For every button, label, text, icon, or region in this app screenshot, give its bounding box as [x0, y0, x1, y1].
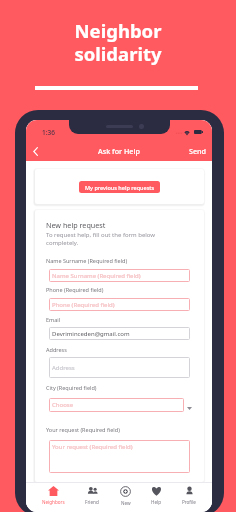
staticText: Profile: [182, 499, 196, 505]
staticText: Your request (Required field): [46, 426, 120, 433]
button[interactable]: Profile: [178, 483, 200, 502]
button[interactable]: Address: [49, 357, 190, 378]
staticText: New: [121, 500, 131, 506]
staticText: Address: [46, 346, 67, 353]
button[interactable]: Choose city: [185, 404, 194, 412]
button[interactable]: Your request (Required field): [49, 440, 190, 473]
staticText: Devriminceden@gmail.com: [52, 330, 130, 338]
staticText: Neighbor solidarity: [74, 18, 162, 66]
staticText: To request help, fill out the form below…: [46, 231, 156, 247]
button[interactable]: New: [116, 483, 135, 503]
button[interactable]: My previous help requests: [79, 181, 160, 193]
staticText: Address: [52, 364, 75, 372]
button[interactable]: Friend: [81, 483, 103, 502]
staticText: Neighbors: [42, 499, 65, 505]
staticText: My previous help requests: [85, 184, 155, 191]
staticText: Choose: [52, 401, 74, 409]
staticText: Phone (Required field): [52, 301, 115, 309]
staticText: Phone (Required field): [46, 286, 104, 293]
staticText: Your request (Required field): [52, 443, 133, 451]
staticText: Send: [189, 146, 207, 156]
button[interactable]: Send: [184, 142, 212, 160]
button[interactable]: Back: [27, 143, 43, 159]
button[interactable]: Name Surname (Required field): [49, 269, 190, 282]
button[interactable]: Devriminceden@gmail.com: [49, 327, 190, 340]
button[interactable]: Choose: [49, 398, 184, 412]
button[interactable]: Help: [147, 483, 166, 502]
staticText: Name Surname (Required field): [52, 272, 141, 280]
staticText: City (Required field): [46, 384, 97, 391]
staticText: Help: [151, 499, 162, 505]
staticText: Email: [46, 316, 61, 323]
staticText: New help request: [46, 220, 106, 230]
staticText: Friend: [85, 499, 99, 505]
staticText: Ask for Help: [98, 146, 140, 156]
button[interactable]: Neighbors: [38, 483, 69, 502]
staticText: Name Surname (Required field): [46, 257, 128, 264]
button[interactable]: Phone (Required field): [49, 298, 190, 311]
staticText: 1:36: [42, 128, 55, 137]
